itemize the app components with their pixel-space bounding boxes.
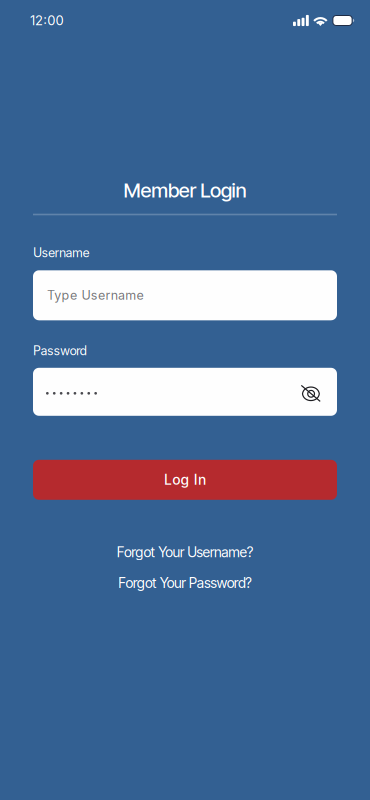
- staticText: Forgot Your Password?: [118, 575, 252, 591]
- staticText: Type Username: [47, 288, 144, 303]
- staticText: Password: [33, 343, 87, 358]
- staticText: Username: [33, 245, 89, 260]
- staticText: Member Login: [124, 178, 246, 202]
- button[interactable]: Log In: [33, 460, 337, 500]
- button[interactable]: Show password: [302, 384, 320, 399]
- staticText: Log In: [164, 471, 206, 488]
- button[interactable]: Forgot Your Password?: [118, 575, 252, 591]
- staticText: 12:00: [30, 13, 63, 28]
- staticText: Forgot Your Username?: [116, 544, 253, 561]
- button[interactable]: Forgot Your Username?: [116, 544, 253, 561]
